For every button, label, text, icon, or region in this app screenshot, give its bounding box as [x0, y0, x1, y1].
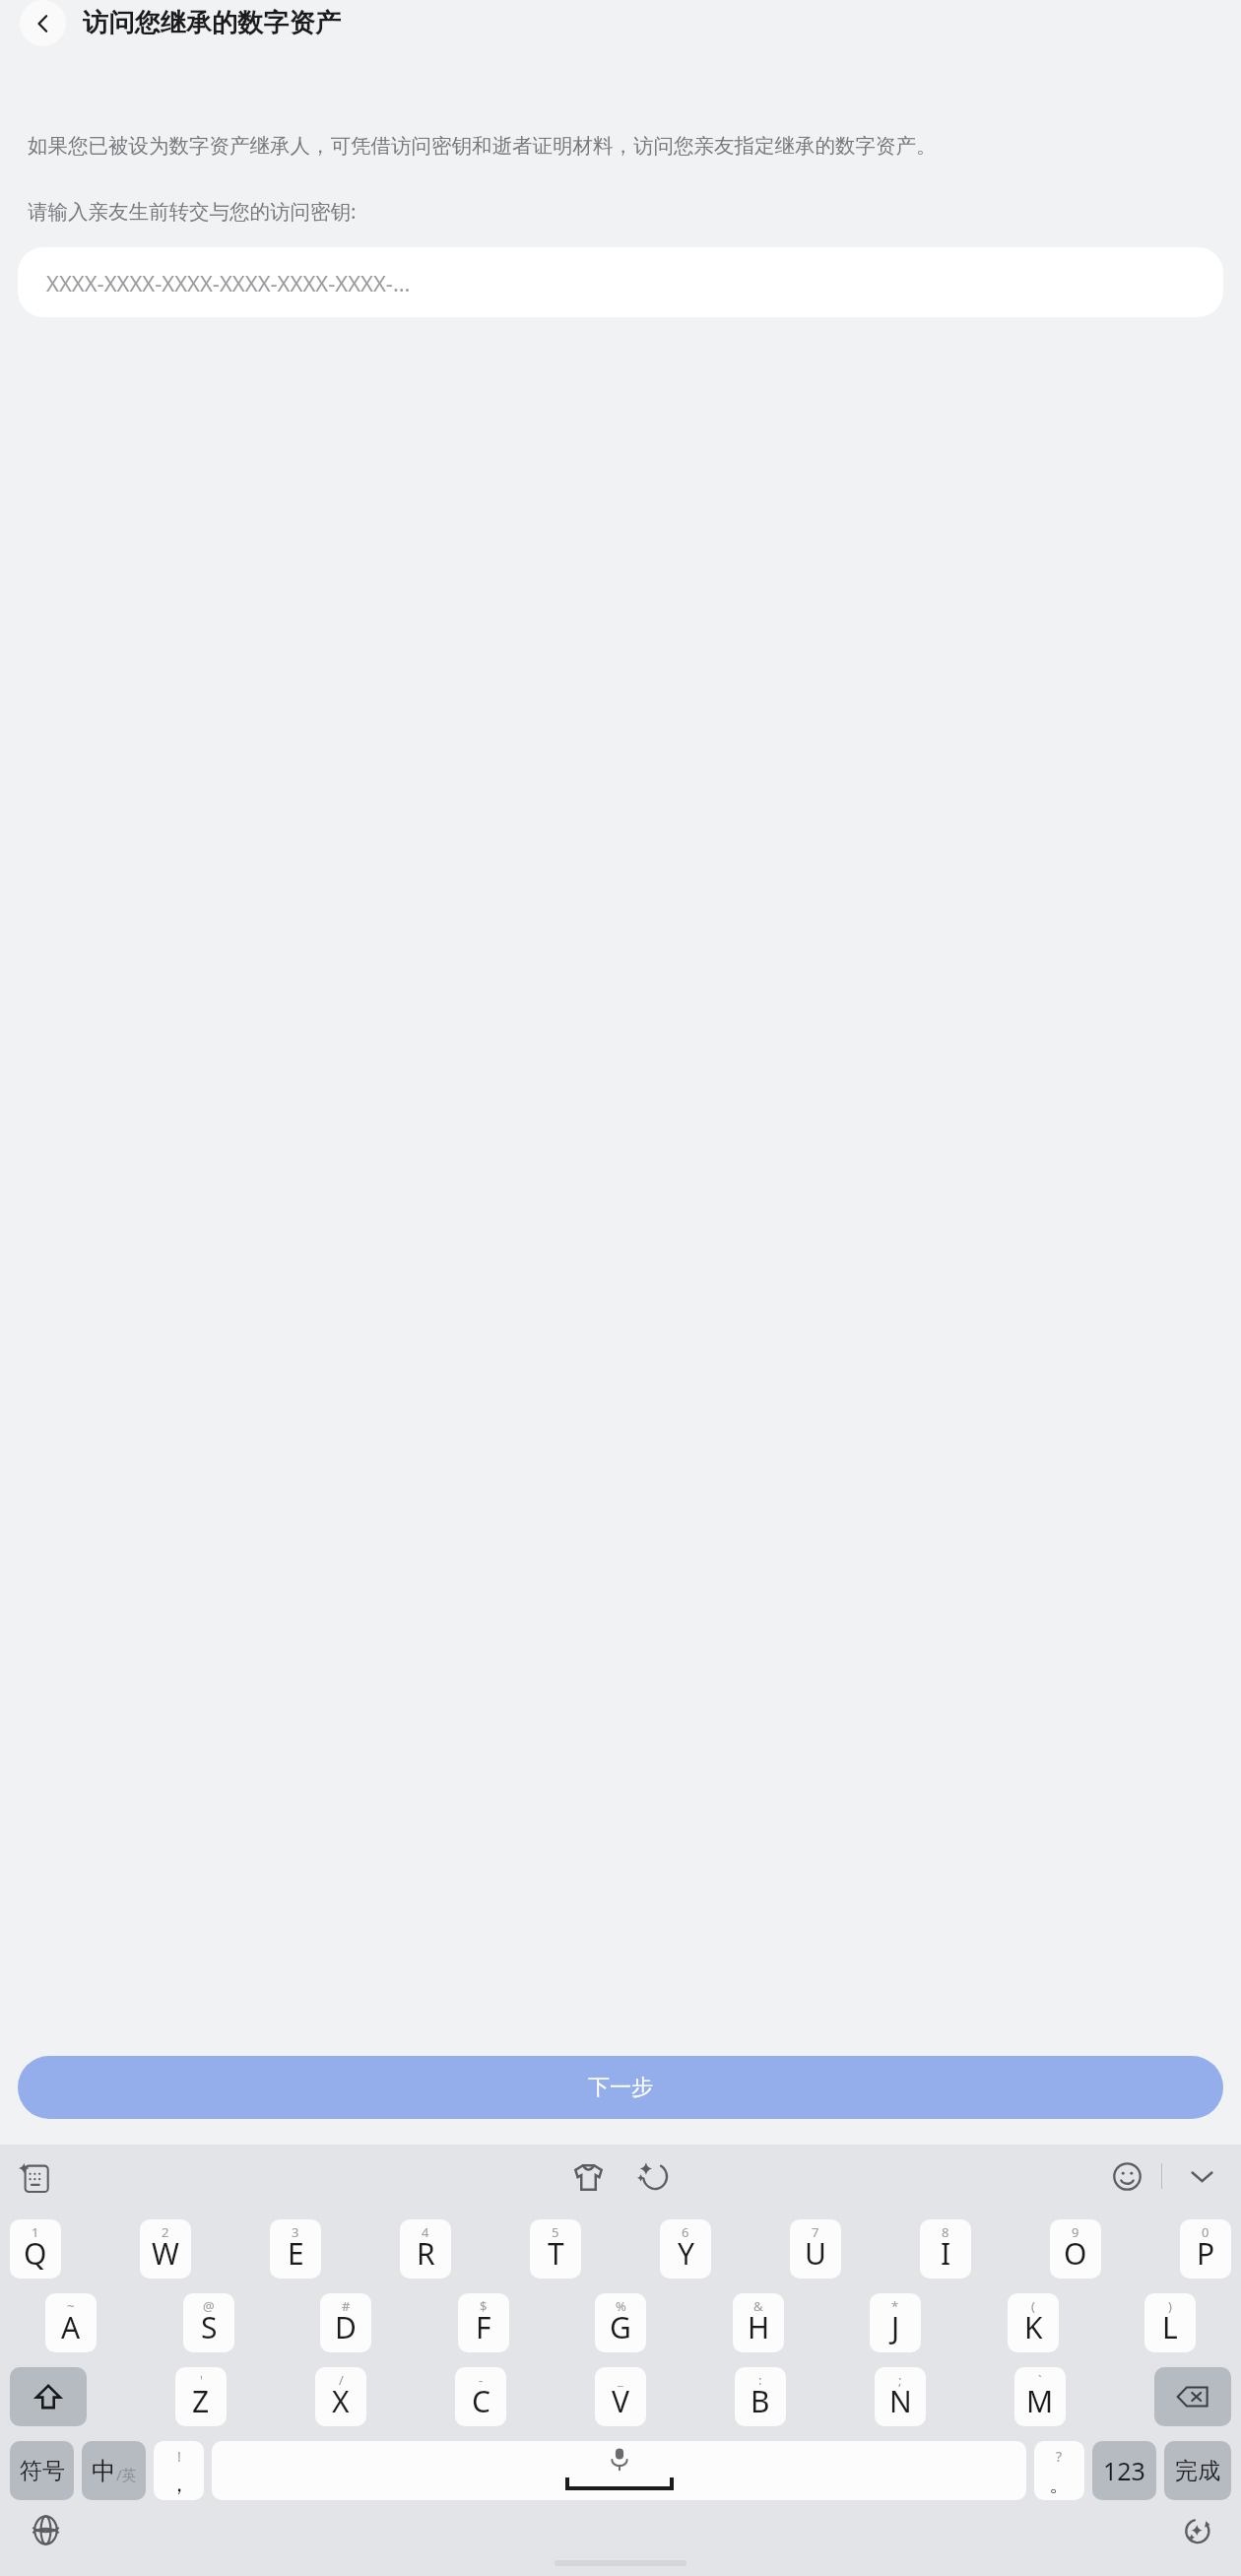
staticText: E [288, 2233, 304, 2274]
button[interactable]: / [315, 2367, 366, 2426]
staticText: XXXX-XXXX-XXXX-XXXX-XXXX-XXXX-… [46, 268, 411, 297]
button[interactable]: 1 [10, 2219, 61, 2279]
button[interactable]: 2 [140, 2219, 191, 2279]
staticText: Q [24, 2233, 47, 2274]
button[interactable]: @ [183, 2293, 234, 2352]
button[interactable]: 4 [400, 2219, 451, 2279]
staticText: 中 [92, 2456, 116, 2486]
staticText: ， [168, 2471, 190, 2498]
staticText: / [339, 2371, 344, 2389]
staticText: H [748, 2307, 770, 2347]
button[interactable]: 5 [530, 2219, 581, 2279]
button[interactable]: AI [630, 2154, 674, 2198]
button[interactable]: * [870, 2293, 921, 2352]
staticText: 6 [682, 2223, 689, 2241]
button[interactable]: ~ [45, 2293, 97, 2352]
staticText: 4 [422, 2223, 429, 2241]
button[interactable]: 返回 [20, 0, 66, 46]
staticText: * [891, 2297, 899, 2315]
button[interactable]: 收起键盘 [1180, 2154, 1223, 2198]
button[interactable] [10, 2367, 87, 2426]
button[interactable]: 8 [920, 2219, 971, 2279]
button[interactable]: 符号 [10, 2441, 74, 2500]
staticText: 8 [942, 2223, 949, 2241]
staticText: V [612, 2381, 629, 2421]
button[interactable]: ! [154, 2441, 204, 2500]
button[interactable]: 3 [270, 2219, 321, 2279]
button[interactable]: 7 [790, 2219, 841, 2279]
button[interactable] [1154, 2367, 1231, 2426]
button[interactable]: 智能键盘 [14, 2154, 57, 2198]
button[interactable]: ( [1008, 2293, 1059, 2352]
button[interactable]: - [455, 2367, 506, 2426]
staticText: T [548, 2233, 564, 2274]
staticText: B [751, 2381, 770, 2421]
staticText: : [758, 2371, 762, 2389]
button[interactable]: : [735, 2367, 786, 2426]
button[interactable]: & [733, 2293, 784, 2352]
staticText: 符号 [20, 2457, 65, 2485]
button[interactable]: 9 [1050, 2219, 1101, 2279]
staticText: 123 [1103, 2454, 1145, 2487]
staticText: W [152, 2233, 179, 2274]
button[interactable]: 中 [82, 2441, 146, 2500]
button[interactable]: ? [1034, 2441, 1084, 2500]
staticText: 0 [1202, 2223, 1209, 2241]
staticText: /英 [116, 2465, 137, 2484]
staticText: ' [200, 2371, 203, 2389]
button[interactable]: 123 [1092, 2441, 1156, 2500]
button[interactable]: 空格 [212, 2441, 1026, 2500]
staticText: ; [898, 2371, 902, 2389]
staticText: 访问您继承的数字资产 [83, 7, 341, 39]
staticText: C [472, 2381, 490, 2421]
staticText: 1 [32, 2223, 39, 2241]
staticText: 完成 [1175, 2457, 1220, 2485]
staticText: S [201, 2307, 218, 2347]
button[interactable]: 0 [1180, 2219, 1231, 2279]
staticText: $ [480, 2297, 488, 2315]
button[interactable]: ' [175, 2367, 227, 2426]
staticText: ( [1031, 2297, 1035, 2315]
button[interactable]: 切换语言 [24, 2508, 67, 2551]
staticText: D [335, 2307, 357, 2347]
button[interactable]: # [320, 2293, 371, 2352]
button[interactable]: % [595, 2293, 646, 2352]
button[interactable]: 6 [660, 2219, 711, 2279]
staticText: 7 [812, 2223, 819, 2241]
button[interactable]: ) [1144, 2293, 1196, 2352]
staticText: _ [618, 2371, 623, 2389]
staticText: K [1024, 2307, 1043, 2347]
staticText: M [1026, 2381, 1054, 2421]
staticText: ! [177, 2447, 181, 2466]
button[interactable]: 下一步 [18, 2056, 1223, 2119]
staticText: # [342, 2297, 351, 2315]
button[interactable]: 设置 [1176, 2508, 1219, 2551]
staticText: J [891, 2307, 900, 2347]
staticText: P [1197, 2233, 1215, 2274]
button[interactable]: $ [458, 2293, 509, 2352]
button[interactable]: 贴纸 [566, 2154, 610, 2198]
staticText: - [479, 2371, 484, 2389]
button[interactable]: 完成 [1164, 2441, 1231, 2500]
button[interactable]: ; [875, 2367, 926, 2426]
staticText: 如果您已被设为数字资产继承人，可凭借访问密钥和逝者证明材料，访问您亲友指定继承的… [28, 133, 1213, 159]
staticText: U [805, 2233, 826, 2274]
button[interactable]: _ [595, 2367, 646, 2426]
staticText: I [941, 2233, 951, 2274]
button[interactable]: XXXX-XXXX-XXXX-XXXX-XXXX-XXXX-… [18, 247, 1223, 317]
staticText: 9 [1072, 2223, 1079, 2241]
staticText: Z [192, 2381, 210, 2421]
staticText: Y [678, 2233, 694, 2274]
staticText: % [616, 2297, 626, 2315]
staticText: 3 [292, 2223, 299, 2241]
staticText: 请输入亲友生前转交与您的访问密钥: [28, 197, 357, 225]
staticText: ? [1056, 2447, 1063, 2466]
button[interactable]: ` [1014, 2367, 1066, 2426]
staticText: N [889, 2381, 912, 2421]
staticText: F [476, 2307, 491, 2347]
staticText: 下一步 [588, 2074, 653, 2101]
staticText: 。 [1049, 2471, 1071, 2498]
staticText: O [1064, 2233, 1087, 2274]
button[interactable]: 表情 [1105, 2154, 1148, 2198]
staticText: @ [203, 2297, 215, 2315]
